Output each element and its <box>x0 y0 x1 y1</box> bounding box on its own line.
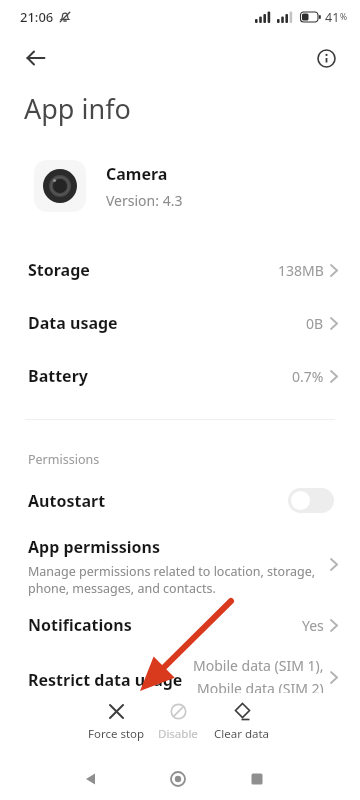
button[interactable] <box>22 44 50 72</box>
staticText: Data usage <box>28 312 118 334</box>
button[interactable]: Restrict data usage <box>0 648 360 706</box>
staticText: Battery <box>28 365 88 387</box>
staticText: 0.7% <box>292 367 324 386</box>
button[interactable]: Data usage <box>0 303 360 343</box>
staticText: Force stop <box>88 726 145 742</box>
staticText: Disable <box>158 726 198 742</box>
staticText: 41 <box>325 9 340 26</box>
staticText: Permissions <box>28 451 100 468</box>
button[interactable] <box>162 763 194 795</box>
staticText: 21:06 <box>20 8 54 26</box>
staticText: Storage <box>28 259 90 281</box>
staticText: Version: 4.3 <box>106 191 183 210</box>
button[interactable]: Storage <box>0 250 360 290</box>
staticText: Notifications <box>28 614 132 636</box>
staticText: Manage permissions related to location, … <box>28 563 316 597</box>
staticText: % <box>340 11 348 23</box>
button[interactable]: Battery <box>0 356 360 396</box>
button[interactable]: Disable <box>136 703 220 742</box>
button[interactable] <box>241 763 273 795</box>
button[interactable] <box>312 44 340 72</box>
staticText: Restrict data usage <box>28 669 183 691</box>
button[interactable]: Notifications <box>0 605 360 645</box>
staticText: Clear data <box>214 726 270 742</box>
button[interactable]: Force stop <box>74 703 158 742</box>
staticText: Mobile data (SIM 1), <box>193 656 324 675</box>
staticText: Autostart <box>28 490 106 512</box>
staticText: App info <box>24 90 131 127</box>
staticText: 0B <box>306 314 324 333</box>
staticText: Camera <box>106 163 168 185</box>
staticText: 138MB <box>278 261 324 280</box>
staticText: Mobile data (SIM 2) <box>197 679 324 698</box>
button[interactable] <box>75 763 107 795</box>
staticText: Yes <box>302 616 324 635</box>
button[interactable]: App permissions <box>0 530 360 598</box>
button[interactable]: Clear data <box>200 703 284 742</box>
staticText: App permissions <box>28 536 160 558</box>
button[interactable]: Autostart <box>0 480 360 521</box>
